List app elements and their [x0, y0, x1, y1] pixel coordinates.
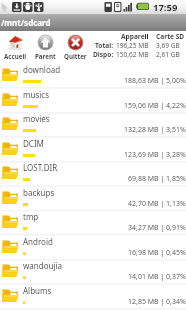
staticText: tmp	[23, 211, 39, 222]
staticText: DCIM	[23, 138, 44, 149]
staticText: LOST.DIR	[23, 162, 58, 173]
staticText: Android	[23, 236, 53, 247]
staticText: 159,06 MB | 4,22%	[124, 101, 186, 111]
other: Accueil	[7, 34, 24, 51]
staticText: 2,61 GB	[156, 50, 180, 59]
staticText: 3,69 GB	[156, 41, 180, 50]
button[interactable]: musics	[0, 89, 186, 114]
button[interactable]: LOST.DIR	[0, 162, 186, 187]
staticText: 17:59	[153, 1, 178, 14]
other: Parent	[37, 34, 54, 51]
button[interactable]: download	[0, 64, 186, 89]
staticText: movies	[23, 113, 50, 124]
button[interactable]: Albums	[0, 285, 186, 310]
button[interactable]: tmp	[0, 211, 186, 236]
staticText: musics	[23, 89, 49, 100]
staticText: 196,25 MB	[116, 41, 149, 50]
staticText: Parent	[35, 52, 56, 60]
staticText: 42,70 MB | 1,13%	[128, 199, 186, 209]
staticText: 34,27 MB | 0,91%	[128, 223, 186, 233]
staticText: Carte SD	[156, 32, 185, 41]
button[interactable]: Quitter	[62, 31, 89, 64]
staticText: Total:	[95, 41, 114, 50]
button[interactable]: Accueil	[2, 31, 29, 64]
button[interactable]: backups	[0, 187, 186, 212]
staticText: 14,01 MB | 0,37%	[128, 272, 186, 282]
staticText: download	[23, 64, 61, 75]
staticText: 12,85 MB | 0,34%	[128, 297, 186, 307]
staticText: 188,63 MB | 5,00%	[124, 76, 186, 86]
button[interactable]: Parent	[32, 31, 59, 64]
staticText: 123,69 MB | 3,28%	[124, 150, 186, 160]
button[interactable]: wandoujia	[0, 260, 186, 285]
button[interactable]: DCIM	[0, 138, 186, 163]
staticText: 150,62 MB	[116, 50, 149, 59]
button[interactable]: movies	[0, 113, 186, 138]
staticText: backups	[23, 187, 55, 198]
staticText: 132,28 MB | 3,51%	[124, 125, 186, 135]
staticText: Albums	[23, 285, 52, 296]
staticText: Appareil	[121, 32, 149, 41]
staticText: 69,88 MB | 1,85%	[128, 174, 186, 184]
staticText: Dispo:	[93, 50, 114, 59]
staticText: 16,98 MB | 0,45%	[128, 248, 186, 258]
staticText: Quitter	[64, 52, 87, 60]
staticText: wandoujia	[23, 260, 63, 271]
button[interactable]: Android	[0, 236, 186, 261]
other: Quitter	[67, 34, 84, 51]
staticText: /mnt/sdcard	[1, 17, 51, 28]
staticText: Accueil	[4, 52, 27, 60]
